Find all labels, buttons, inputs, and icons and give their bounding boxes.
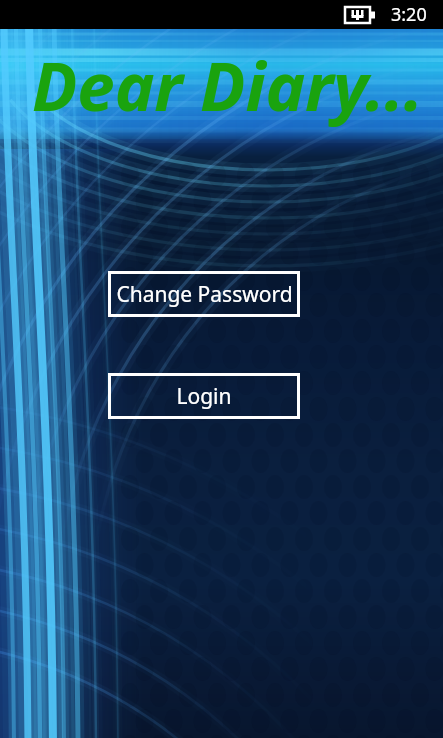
staticText: Change Password [116, 280, 293, 309]
button[interactable]: Change Password [108, 271, 300, 317]
staticText: Dear Diary... [32, 39, 424, 130]
staticText: 3:20 [391, 2, 427, 27]
other: Battery charging [345, 6, 375, 24]
button[interactable]: Login [108, 373, 300, 419]
staticText: Login [176, 382, 232, 411]
